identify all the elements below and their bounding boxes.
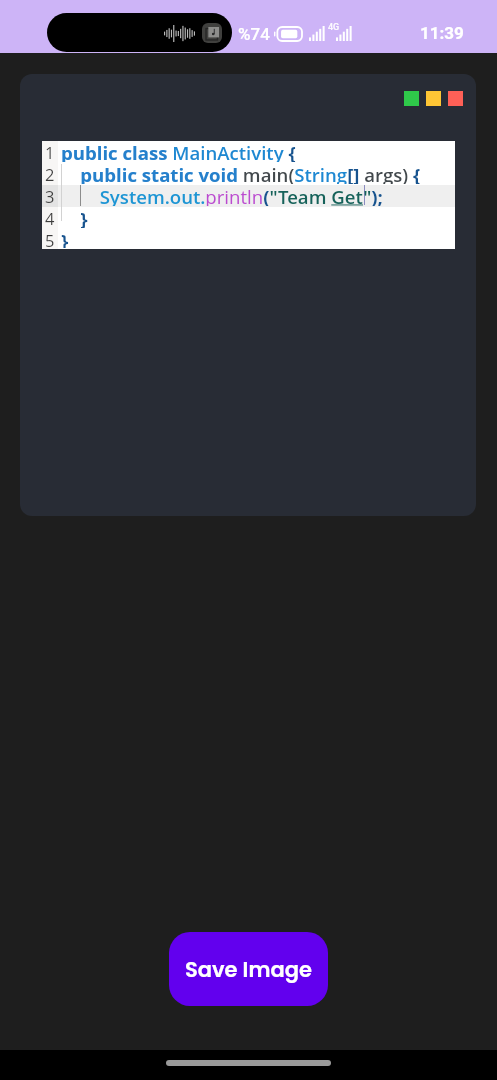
- staticText: public static void main(String[] args) {: [61, 162, 421, 184]
- staticText: 1: [45, 141, 55, 163]
- button[interactable]: Save Image: [169, 932, 328, 1006]
- staticText: }: [61, 228, 69, 248]
- staticText: %74: [238, 24, 270, 44]
- staticText: }: [61, 206, 88, 228]
- staticText: 2: [45, 163, 55, 185]
- staticText: Save Image: [185, 955, 312, 984]
- staticText: 3: [45, 185, 55, 207]
- staticText: 4G: [328, 22, 340, 33]
- staticText: 4: [45, 207, 55, 229]
- staticText: 11:39: [420, 23, 464, 43]
- staticText: public class MainActivity {: [61, 140, 296, 162]
- staticText: 5: [45, 229, 55, 249]
- staticText: System.out.println("Team Get");: [61, 184, 383, 206]
